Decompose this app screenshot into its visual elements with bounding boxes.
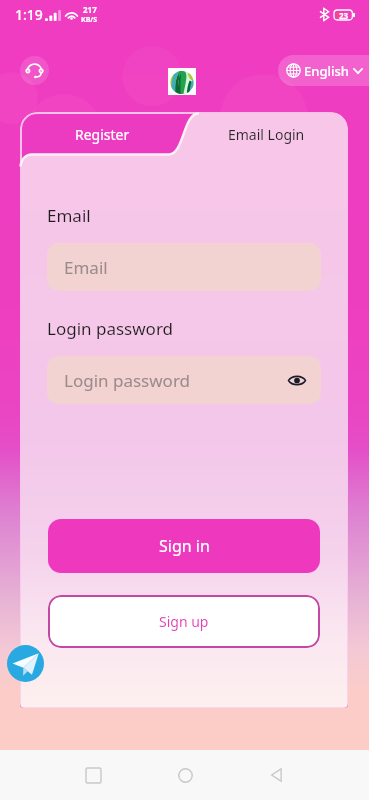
staticText: Login password (47, 317, 174, 340)
button[interactable]: Register (20, 112, 184, 156)
button[interactable]: Login password (47, 356, 321, 404)
staticText: Sign up (159, 612, 209, 631)
button[interactable]: Sign in (48, 519, 320, 573)
staticText: English (304, 62, 349, 80)
button[interactable]: Email (47, 243, 321, 291)
button[interactable]: Recents (78, 760, 108, 790)
staticText: 1:19 (15, 5, 43, 24)
staticText: 217 (83, 4, 97, 15)
button[interactable]: Show password (285, 368, 309, 392)
button[interactable]: Customer support (20, 56, 49, 85)
button[interactable]: Telegram (7, 645, 44, 682)
staticText: Email Login (228, 125, 305, 144)
staticText: 23 (339, 10, 349, 20)
staticText: KB/S (81, 15, 98, 25)
button[interactable]: Back (261, 760, 291, 790)
button[interactable]: Email Login (184, 112, 348, 156)
staticText: Sign in (159, 535, 210, 557)
staticText: Login password (64, 369, 191, 392)
button[interactable]: English (278, 55, 369, 86)
staticText: Email (47, 204, 91, 227)
staticText: Email (64, 256, 108, 279)
staticText: Register (75, 125, 130, 144)
button[interactable]: Sign up (48, 595, 320, 648)
button[interactable]: Home (170, 760, 200, 790)
